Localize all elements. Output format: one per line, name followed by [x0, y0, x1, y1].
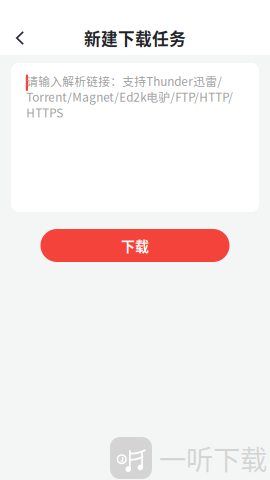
staticText: 一听下载: [159, 438, 267, 478]
staticText: 新建下载任务: [84, 26, 186, 50]
button[interactable]: 下载: [40, 229, 229, 262]
button[interactable]: Back: [0, 21, 40, 55]
staticText: 请输入解析链接：支持Thunder迅雷/Torrent/Magnet/Ed2k电…: [26, 73, 233, 120]
staticText: 下载: [121, 235, 149, 256]
